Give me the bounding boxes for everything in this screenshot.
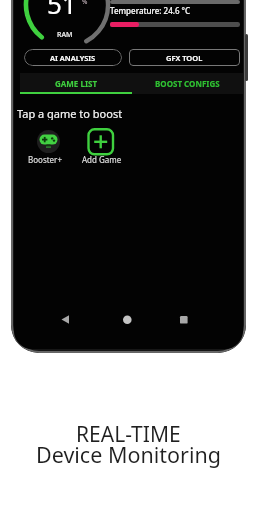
staticText: AI ANALYSIS [50, 53, 96, 63]
staticText: Temperature: 24.6 °C [110, 5, 191, 16]
button[interactable]: GAME LIST [20, 73, 132, 94]
staticText: % [82, 0, 88, 6]
staticText: GAME LIST [55, 78, 98, 89]
staticText: BOOST CONFIGS [155, 78, 220, 89]
button[interactable]: AI ANALYSIS [24, 49, 122, 66]
button[interactable] [87, 128, 115, 156]
staticText: Booster+ [28, 154, 62, 165]
staticText: 51 [47, 0, 77, 17]
staticText: Device Monitoring [36, 440, 221, 469]
staticText: REAL-TIME [76, 420, 181, 449]
button[interactable] [55, 311, 71, 327]
staticText: Tap a game to boost [17, 106, 123, 120]
button[interactable]: GFX TOOL [129, 49, 240, 66]
staticText: RAM [57, 30, 73, 40]
button[interactable] [172, 311, 188, 327]
button[interactable] [119, 311, 135, 327]
button[interactable]: BOOST CONFIGS [132, 73, 243, 94]
staticText: Add Game [82, 154, 122, 165]
button[interactable] [37, 130, 60, 153]
staticText: GFX TOOL [166, 53, 203, 63]
